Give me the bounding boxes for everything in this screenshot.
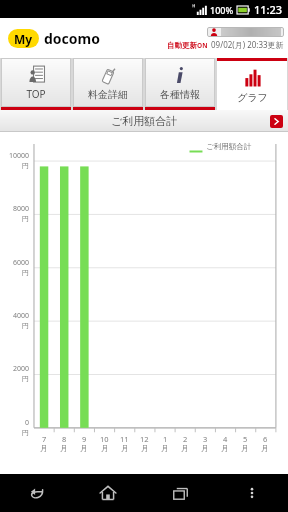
staticText: 0: [24, 418, 29, 428]
staticText: 100%: [210, 4, 234, 16]
staticText: 2: [183, 434, 188, 444]
staticText: 9: [82, 434, 87, 444]
staticText: 7: [42, 434, 47, 444]
staticText: 8000: [12, 204, 29, 214]
staticText: グラフ: [237, 91, 268, 104]
button[interactable]: Home: [72, 474, 144, 512]
staticText: 3: [203, 434, 208, 444]
staticText: 円: [22, 428, 29, 437]
button[interactable]: 各種情報: [145, 58, 215, 110]
staticText: 月: [101, 444, 109, 453]
staticText: 6000: [12, 258, 29, 268]
staticText: 8: [62, 434, 67, 444]
button[interactable]: My docomo: [8, 29, 100, 48]
staticText: 円: [22, 321, 29, 330]
staticText: 11:23: [254, 2, 283, 17]
staticText: 10000: [8, 151, 29, 161]
staticText: 1: [163, 434, 168, 444]
staticText: docomo: [44, 29, 100, 48]
staticText: 各種情報: [160, 88, 200, 101]
button[interactable]: Recent apps: [144, 474, 216, 512]
staticText: 月: [141, 444, 149, 453]
staticText: 12: [140, 434, 149, 444]
staticText: My: [14, 31, 33, 47]
staticText: 月: [181, 444, 189, 453]
staticText: 円: [22, 214, 29, 223]
staticText: 月: [241, 444, 249, 453]
staticText: ご利用額合計: [206, 142, 252, 151]
staticText: 6: [263, 434, 268, 444]
staticText: 円: [22, 161, 29, 170]
staticText: 09/02(月) 20:33更新: [211, 39, 284, 50]
staticText: 自動更新: [167, 41, 197, 50]
staticText: 月: [121, 444, 129, 453]
staticText: 5: [243, 434, 248, 444]
button[interactable]: グラフ: [217, 58, 287, 110]
staticText: 月: [40, 444, 48, 453]
staticText: 4000: [12, 311, 29, 321]
staticText: 料金詳細: [88, 88, 128, 101]
button[interactable]: Account: [207, 27, 284, 37]
staticText: ON: [197, 41, 208, 50]
button[interactable]: 次へ: [270, 115, 283, 128]
button[interactable]: Back: [0, 474, 72, 512]
staticText: ご利用額合計: [111, 114, 178, 128]
staticText: 月: [261, 444, 269, 453]
staticText: 月: [201, 444, 209, 453]
button[interactable]: 料金詳細: [73, 58, 143, 110]
staticText: TOP: [26, 87, 46, 101]
staticText: 月: [80, 444, 88, 453]
staticText: 10: [100, 434, 109, 444]
button[interactable]: More options: [216, 474, 288, 512]
staticText: 月: [60, 444, 68, 453]
staticText: 月: [221, 444, 229, 453]
staticText: 11: [120, 434, 129, 444]
staticText: 4: [223, 434, 228, 444]
staticText: 2000: [12, 364, 29, 374]
staticText: 円: [22, 374, 29, 383]
button[interactable]: TOP: [1, 58, 71, 110]
staticText: 円: [22, 268, 29, 277]
staticText: 月: [161, 444, 169, 453]
